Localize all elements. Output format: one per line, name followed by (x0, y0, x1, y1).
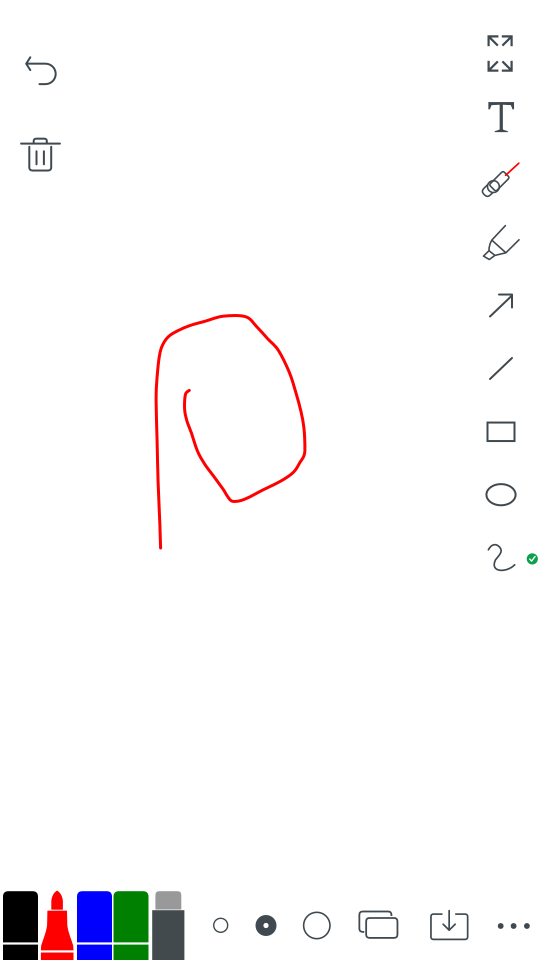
button[interactable]: Thin stroke (213, 918, 228, 933)
button[interactable]: Rectangle tool (486, 421, 516, 442)
button[interactable]: Save (430, 910, 469, 940)
button[interactable]: Highlighter tool (483, 224, 520, 260)
button[interactable]: Thick stroke (303, 911, 331, 939)
button[interactable]: Clear canvas (19, 132, 62, 174)
button[interactable]: Green pen (113, 891, 148, 960)
button[interactable]: Arrow tool (489, 294, 513, 318)
button[interactable]: Eraser (152, 891, 184, 960)
button[interactable]: Undo (19, 51, 57, 89)
button[interactable]: Ellipse tool (485, 483, 517, 506)
button[interactable]: Blue pen (77, 891, 112, 960)
button[interactable]: Medium stroke, selected (255, 915, 276, 936)
button[interactable]: More options (498, 923, 530, 929)
button[interactable]: Line tool (489, 357, 513, 380)
button[interactable]: Black pen (3, 891, 38, 960)
button[interactable]: Pages (358, 911, 398, 939)
button[interactable]: Full screen (487, 35, 513, 72)
button[interactable]: Pen tool (480, 162, 520, 196)
button[interactable]: Freehand tool, selected (487, 543, 538, 574)
button[interactable]: Text tool (488, 101, 515, 133)
button[interactable]: Red marker, selected (41, 891, 73, 960)
